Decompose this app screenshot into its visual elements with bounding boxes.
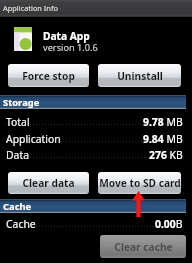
staticText: Move to SD card xyxy=(99,176,181,190)
button[interactable]: Data xyxy=(0,141,186,157)
button[interactable]: Clear cache xyxy=(100,235,186,258)
button[interactable]: Uninstall xyxy=(98,64,181,87)
button[interactable]: Cache xyxy=(0,210,186,226)
staticText: Data xyxy=(6,148,29,162)
staticText: version 1.0.6 xyxy=(43,41,98,54)
button[interactable]: Clear data xyxy=(8,172,89,194)
staticText: 0.00B xyxy=(155,217,183,231)
staticText: 9.78 MB xyxy=(143,115,183,129)
staticText: Uninstall xyxy=(117,69,163,83)
button[interactable]: Application xyxy=(0,125,186,141)
staticText: 9.84 MB xyxy=(143,132,183,146)
other: Hint arrow xyxy=(132,191,145,217)
staticText: Cache xyxy=(3,200,32,213)
button[interactable]: Move to SD card xyxy=(98,172,181,194)
staticText: Application Info xyxy=(3,3,58,13)
staticText: Force stop xyxy=(22,69,75,83)
button[interactable]: Force stop xyxy=(8,64,89,87)
button[interactable]: Total xyxy=(0,108,186,124)
staticText: Application xyxy=(6,132,61,146)
staticText: Clear cache xyxy=(114,240,173,254)
staticText: Data App xyxy=(43,29,90,43)
staticText: Storage xyxy=(3,96,40,109)
staticText: 276 KB xyxy=(149,148,183,162)
staticText: Clear data xyxy=(22,176,75,190)
staticText: Total xyxy=(6,115,30,129)
staticText: Cache xyxy=(6,217,36,231)
